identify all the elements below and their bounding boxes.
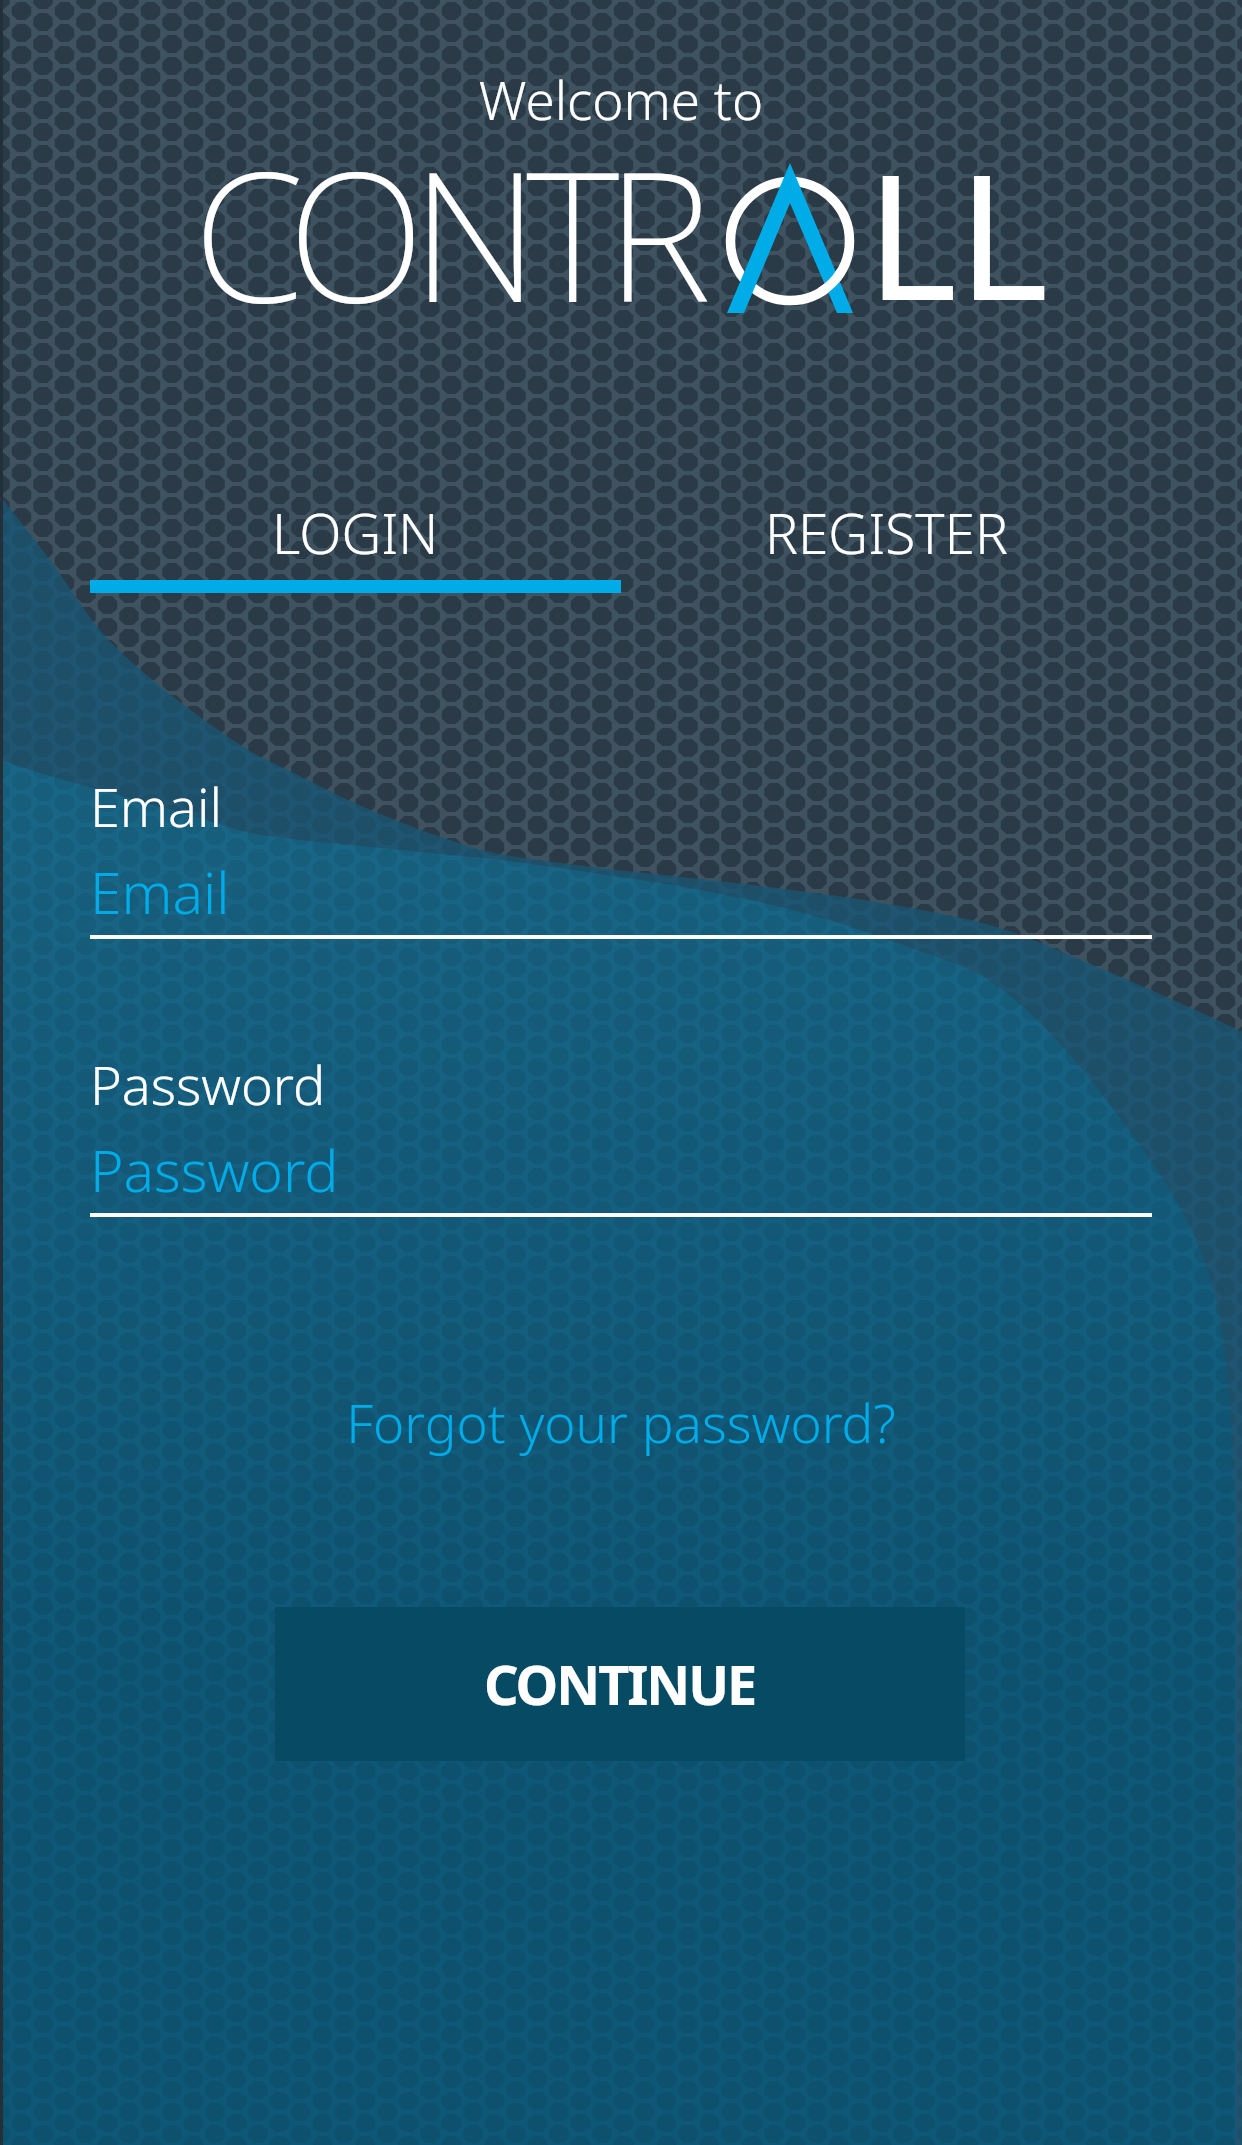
staticText: LOGIN xyxy=(272,495,439,570)
staticText: CONTINUE xyxy=(484,1647,756,1721)
button[interactable]: Forgot your password? xyxy=(0,1386,1242,1458)
staticText: CONTR xyxy=(193,110,699,355)
staticText: Email xyxy=(90,853,230,931)
staticText: Email xyxy=(90,769,223,843)
staticText: Forgot your password? xyxy=(0,1386,1242,1458)
staticText: REGISTER xyxy=(765,495,1008,570)
staticText: LL xyxy=(866,114,1049,351)
button[interactable]: CONTINUE xyxy=(275,1607,965,1761)
staticText: Welcome to xyxy=(0,63,1242,135)
button[interactable]: REGISTER xyxy=(621,495,1152,593)
staticText: Password xyxy=(90,1047,326,1121)
button[interactable]: LOGIN xyxy=(90,495,621,593)
staticText: Password xyxy=(90,1131,339,1209)
